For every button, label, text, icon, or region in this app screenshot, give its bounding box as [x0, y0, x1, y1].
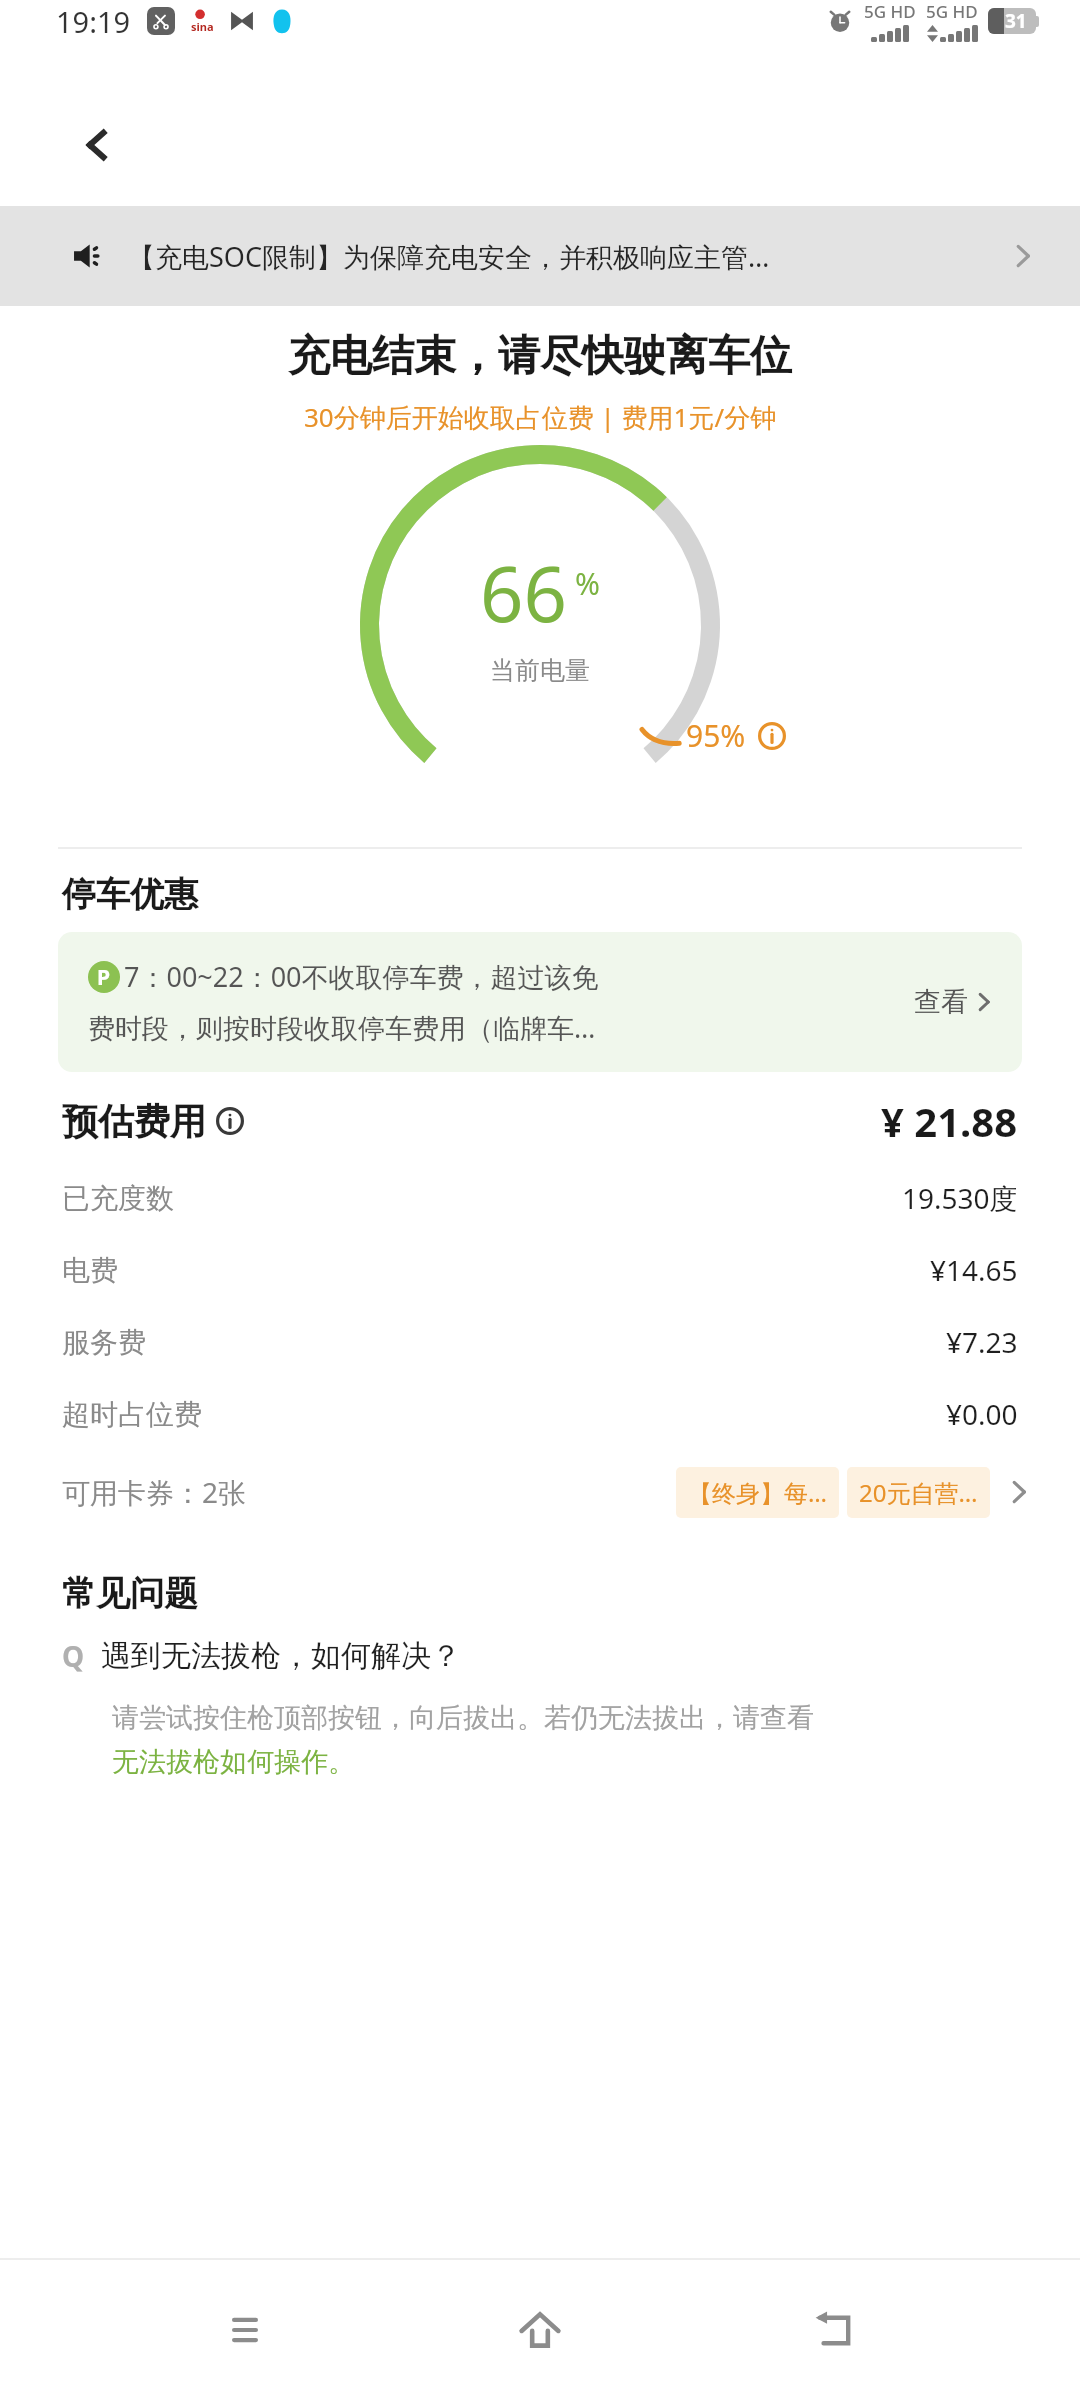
staticText: 已充度数	[62, 1181, 174, 1216]
button[interactable]: 无法拔枪如何操作。	[112, 1745, 355, 1779]
staticText: Q	[62, 1637, 85, 1675]
staticText: 7：00~22：00不收取停车费，超过该免	[124, 958, 599, 995]
staticText: ¥ 21.88	[881, 1094, 1018, 1148]
staticText: 查看	[914, 985, 968, 1019]
button[interactable]: Recents	[195, 2280, 295, 2380]
staticText: 【充电SOC限制】为保障充电安全，并积极响应主管…	[128, 238, 996, 275]
staticText: 19.530度	[902, 1179, 1018, 1217]
staticText: 预估费用	[62, 1099, 206, 1144]
staticText: P	[97, 963, 111, 992]
staticText: 可用卡券：2张	[62, 1473, 247, 1511]
staticText: 请尝试按住枪顶部按钮，向后拔出。若仍无法拔出，请查看	[112, 1701, 814, 1735]
button[interactable]: P	[58, 932, 1022, 1072]
staticText: 费时段，则按时段收取停车费用（临牌车…	[88, 1009, 596, 1046]
staticText: 19:19	[56, 2, 131, 41]
staticText: 30分钟后开始收取占位费 | 费用1元/分钟	[304, 399, 777, 435]
staticText: ¥0.00	[946, 1395, 1018, 1433]
staticText: 超时占位费	[62, 1397, 202, 1432]
staticText: 停车优惠	[62, 873, 198, 916]
staticText: sina	[191, 19, 214, 34]
staticText: 20元自营…	[859, 1476, 978, 1509]
button[interactable]: Back	[66, 114, 128, 176]
staticText: %	[575, 563, 600, 604]
staticText: ¥14.65	[930, 1251, 1018, 1289]
button[interactable]: 【充电SOC限制】为保障充电安全，并积极响应主管…	[0, 206, 1080, 306]
staticText: 当前电量	[490, 655, 590, 686]
button[interactable]: Home	[490, 2280, 590, 2380]
staticText: 31	[1005, 8, 1027, 34]
staticText: 服务费	[62, 1325, 146, 1360]
staticText: 常见问题	[62, 1572, 198, 1615]
button[interactable]: 可用卡券：2张	[0, 1450, 1080, 1534]
staticText: 66	[480, 541, 567, 645]
staticText: ¥7.23	[946, 1323, 1018, 1361]
staticText: 电费	[62, 1253, 118, 1288]
staticText: 【终身】每…	[688, 1476, 827, 1509]
button[interactable]: Back	[785, 2280, 885, 2380]
staticText: 95%	[686, 715, 746, 756]
staticText: 5G HD	[864, 0, 916, 23]
staticText: 遇到无法拔枪，如何解决？	[101, 1637, 461, 1675]
staticText: 5G HD	[926, 0, 978, 23]
button[interactable]: 95%	[640, 715, 786, 756]
staticText: 充电结束，请尽快驶离车位	[288, 330, 792, 383]
